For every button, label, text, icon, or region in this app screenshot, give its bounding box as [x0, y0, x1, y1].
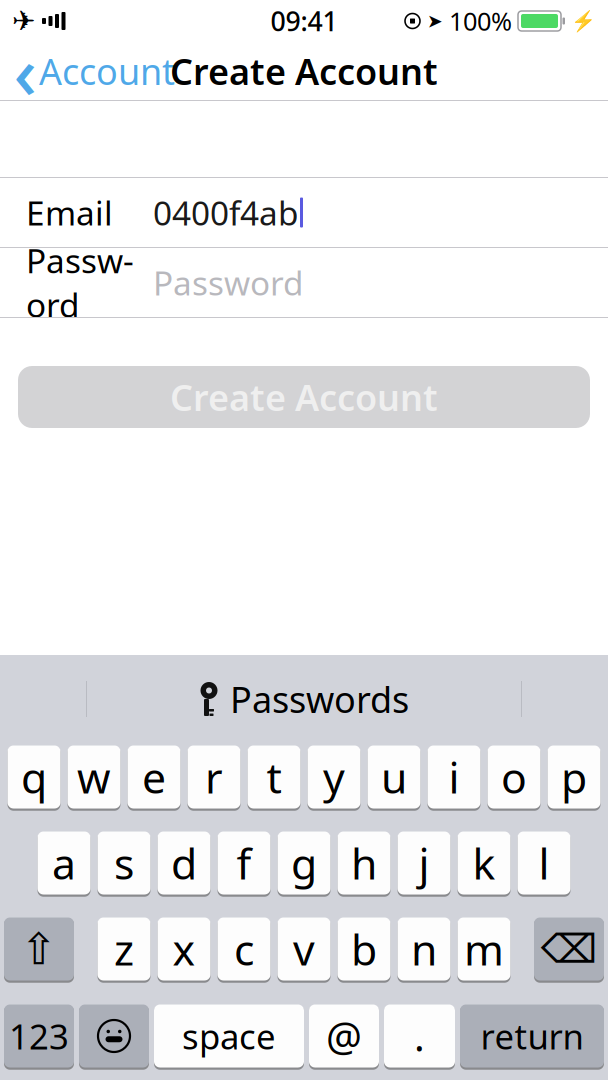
button[interactable]: Passwords — [179, 670, 429, 728]
button[interactable]: Shift — [4, 915, 74, 983]
button[interactable]: Password — [0, 248, 608, 317]
staticText: @ — [326, 1009, 362, 1062]
button[interactable]: Emoji — [79, 1002, 149, 1070]
button[interactable]: v — [277, 915, 330, 983]
staticText: return — [480, 1013, 583, 1059]
button[interactable]: t — [247, 743, 300, 811]
staticText: e — [142, 749, 166, 805]
staticText: Password — [26, 238, 134, 327]
staticText: Email — [26, 190, 113, 235]
staticText: . — [414, 1009, 425, 1062]
button[interactable]: e — [127, 743, 180, 811]
staticText: space — [182, 1013, 276, 1059]
button[interactable]: Email — [0, 178, 608, 247]
staticText: Password — [153, 260, 304, 305]
staticText: t — [266, 749, 281, 805]
button[interactable]: r — [187, 743, 240, 811]
staticText: 100% — [449, 4, 512, 38]
button[interactable]: ‹ — [0, 42, 185, 100]
staticText: u — [381, 749, 407, 805]
button[interactable]: Delete — [534, 915, 604, 983]
button[interactable]: n — [397, 915, 450, 983]
staticText: a — [52, 835, 76, 891]
staticText: Create Account — [170, 47, 438, 95]
staticText: 09:41 — [270, 3, 337, 39]
button[interactable]: g — [277, 829, 330, 897]
staticText: j — [418, 835, 429, 891]
button[interactable]: p — [547, 743, 600, 811]
staticText: s — [114, 835, 134, 891]
staticText: z — [114, 921, 134, 977]
staticText: x — [172, 921, 195, 977]
staticText: f — [236, 835, 251, 891]
button[interactable]: 123 — [4, 1002, 74, 1070]
staticText: 0400f4ab — [153, 190, 299, 235]
button[interactable]: @ — [309, 1002, 379, 1070]
staticText: c — [234, 921, 254, 977]
staticText: v — [293, 921, 315, 977]
button[interactable]: l — [517, 829, 570, 897]
button[interactable]: u — [367, 743, 420, 811]
button[interactable]: i — [427, 743, 480, 811]
staticText: r — [205, 749, 223, 805]
staticText: 123 — [9, 1013, 69, 1059]
button[interactable]: space — [154, 1002, 304, 1070]
staticText: h — [351, 835, 377, 891]
button[interactable]: c — [217, 915, 270, 983]
button[interactable]: d — [157, 829, 210, 897]
button[interactable]: m — [457, 915, 510, 983]
staticText: ⌫ — [540, 926, 597, 972]
button[interactable]: z — [97, 915, 150, 983]
staticText: Passwords — [230, 675, 409, 723]
staticText: Account — [39, 47, 175, 95]
staticText: q — [21, 749, 47, 805]
staticText: b — [351, 921, 377, 977]
button[interactable]: h — [337, 829, 390, 897]
button[interactable]: s — [97, 829, 150, 897]
staticText: ⚡ — [571, 10, 596, 32]
button[interactable]: y — [307, 743, 360, 811]
staticText: p — [561, 749, 587, 805]
staticText: k — [472, 835, 495, 891]
button[interactable]: x — [157, 915, 210, 983]
button[interactable]: k — [457, 829, 510, 897]
button[interactable]: return — [460, 1002, 604, 1070]
staticText: o — [501, 749, 527, 805]
staticText: ➤ — [427, 10, 443, 32]
button[interactable]: j — [397, 829, 450, 897]
staticText: m — [464, 921, 504, 977]
staticText: ⇧ — [20, 924, 57, 974]
button[interactable]: b — [337, 915, 390, 983]
button[interactable]: . — [384, 1002, 455, 1070]
button[interactable]: Create Account — [18, 366, 590, 428]
staticText: g — [291, 835, 317, 891]
staticText: d — [171, 835, 197, 891]
button[interactable]: q — [7, 743, 60, 811]
staticText: w — [77, 749, 111, 805]
staticText: l — [538, 835, 549, 891]
button[interactable]: w — [67, 743, 120, 811]
staticText: n — [411, 921, 437, 977]
staticText: y — [323, 749, 345, 805]
button[interactable]: a — [37, 829, 90, 897]
button[interactable]: f — [217, 829, 270, 897]
staticText: ‹ — [13, 23, 36, 119]
staticText: Create Account — [170, 373, 438, 421]
staticText: ✈ — [12, 5, 35, 37]
button[interactable]: o — [487, 743, 540, 811]
staticText: i — [448, 749, 459, 805]
